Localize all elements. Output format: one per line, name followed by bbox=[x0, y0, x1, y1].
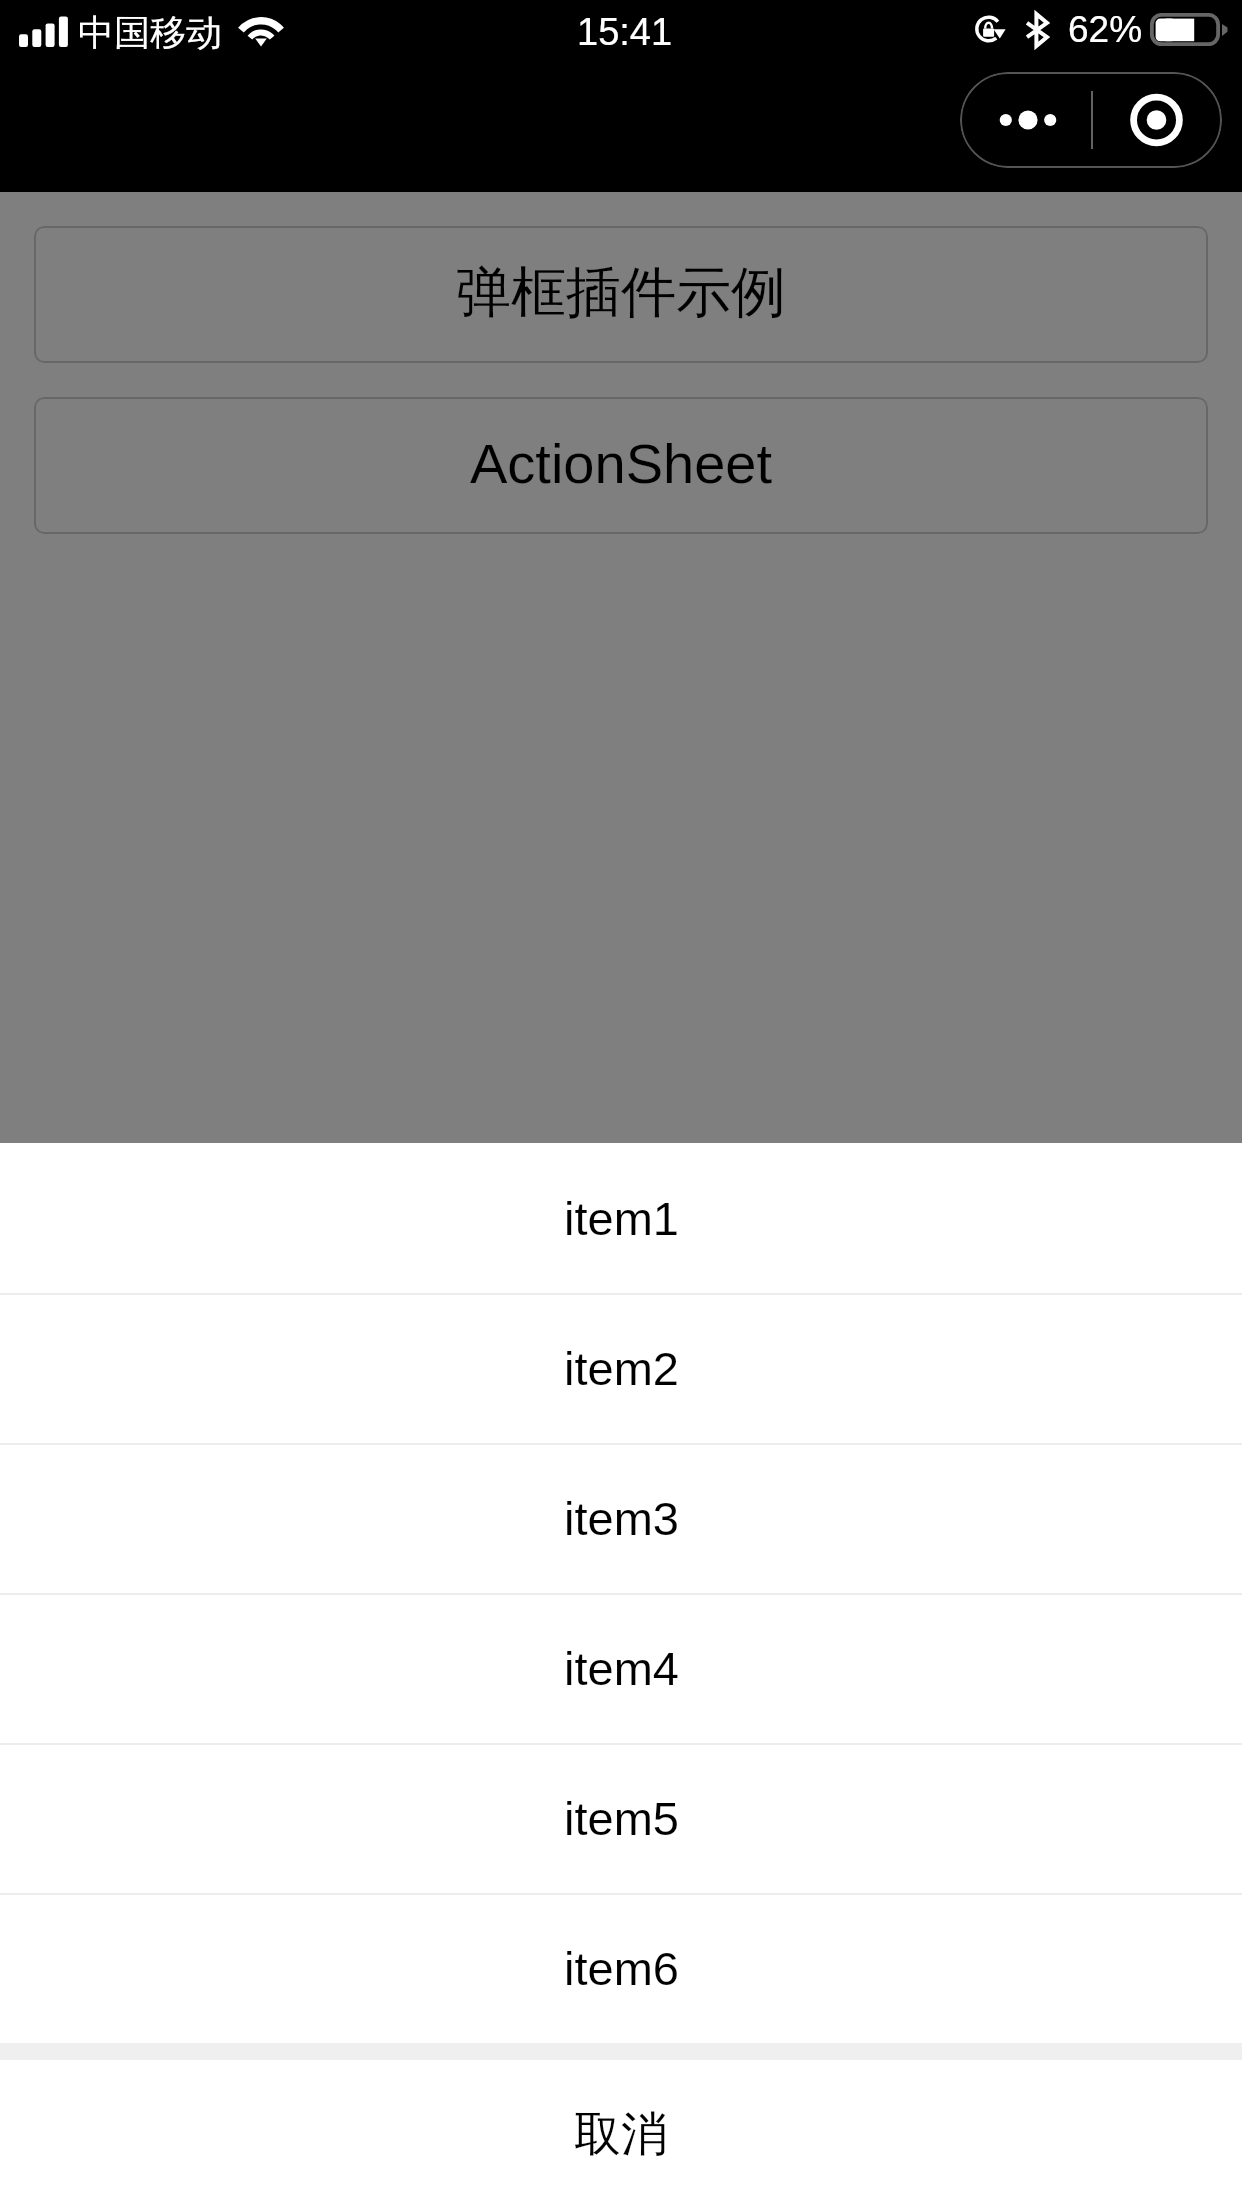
button[interactable]: item2 bbox=[0, 1293, 1242, 1443]
staticText: 15:41 bbox=[577, 11, 673, 53]
staticText: 取消 bbox=[574, 2105, 668, 2164]
button[interactable]: item3 bbox=[0, 1443, 1242, 1593]
staticText: 中国移动 bbox=[78, 10, 222, 55]
button[interactable]: 弹框插件示例 bbox=[34, 226, 1208, 363]
staticText: ActionSheet bbox=[470, 432, 772, 495]
button[interactable]: item1 bbox=[0, 1143, 1242, 1293]
staticText: 62% bbox=[1068, 9, 1143, 50]
button[interactable]: More options bbox=[960, 72, 1091, 168]
button[interactable]: item4 bbox=[0, 1593, 1242, 1743]
staticText: item1 bbox=[564, 1192, 679, 1245]
staticText: item3 bbox=[564, 1492, 679, 1545]
staticText: item4 bbox=[564, 1642, 679, 1695]
staticText: item5 bbox=[564, 1792, 679, 1845]
button[interactable]: 取消 bbox=[0, 2060, 1242, 2208]
staticText: 弹框插件示例 bbox=[456, 258, 786, 327]
button[interactable]: item5 bbox=[0, 1743, 1242, 1893]
staticText: item2 bbox=[564, 1342, 679, 1395]
button[interactable]: item6 bbox=[0, 1893, 1242, 2043]
staticText: item6 bbox=[564, 1942, 679, 1995]
button[interactable]: Close mini program bbox=[1093, 72, 1222, 168]
button[interactable]: ActionSheet bbox=[34, 397, 1208, 534]
